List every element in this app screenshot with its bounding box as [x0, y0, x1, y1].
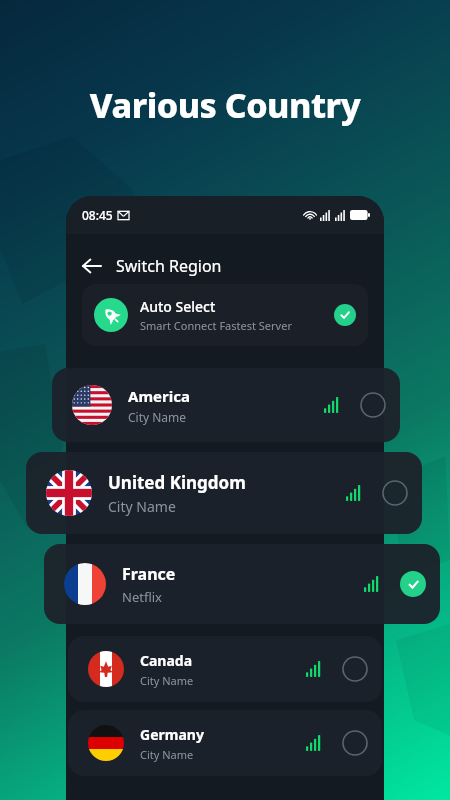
- staticText: Germany: [140, 725, 204, 744]
- staticText: France: [122, 563, 176, 585]
- staticText: Canada: [140, 651, 193, 670]
- button[interactable]: France: [44, 544, 440, 624]
- staticText: Auto Select: [140, 297, 216, 316]
- staticText: Switch Region: [116, 255, 222, 277]
- button[interactable]: United Kingdom: [26, 452, 422, 534]
- staticText: City Name: [140, 747, 194, 762]
- staticText: 08:45: [82, 207, 113, 223]
- staticText: Various Country: [0, 82, 450, 128]
- button[interactable]: Back: [82, 246, 384, 286]
- button[interactable]: America: [52, 368, 400, 442]
- staticText: City Name: [128, 409, 187, 425]
- staticText: City Name: [108, 497, 176, 516]
- staticText: Netflix: [122, 588, 162, 606]
- staticText: Smart Connect Fastest Server: [140, 318, 292, 333]
- button[interactable]: Auto Select: [82, 284, 368, 346]
- staticText: America: [128, 386, 190, 406]
- button[interactable]: Canada: [68, 636, 382, 702]
- button[interactable]: Germany: [68, 710, 382, 776]
- staticText: United Kingdom: [108, 471, 246, 494]
- staticText: City Name: [140, 673, 194, 688]
